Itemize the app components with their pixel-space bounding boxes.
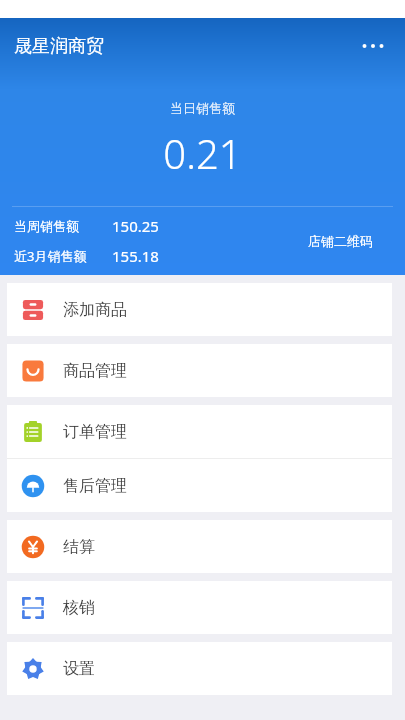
staticText: 近3月销售额 <box>14 247 87 265</box>
staticText: 核销 <box>63 598 95 618</box>
staticText: 当日销售额 <box>170 100 235 116</box>
staticText: 155.18 <box>112 246 159 266</box>
button[interactable]: More options <box>351 24 395 68</box>
staticText: 售后管理 <box>63 476 127 496</box>
staticText: 商品管理 <box>63 361 127 381</box>
button[interactable]: 添加商品 <box>7 283 392 336</box>
button[interactable]: 结算 <box>7 520 392 573</box>
button[interactable]: 订单管理 <box>7 405 392 458</box>
staticText: 店铺二维码 <box>308 233 373 249</box>
button[interactable]: 售后管理 <box>7 459 392 512</box>
button[interactable]: 商品管理 <box>7 344 392 397</box>
button[interactable]: 核销 <box>7 581 392 634</box>
staticText: 添加商品 <box>63 300 127 320</box>
staticText: 150.25 <box>112 216 159 236</box>
staticText: 0.21 <box>163 126 242 180</box>
staticText: 晟星润商贸 <box>14 35 104 58</box>
staticText: 结算 <box>63 537 95 557</box>
button[interactable]: 设置 <box>7 642 392 695</box>
staticText: 当周销售额 <box>14 218 79 234</box>
button[interactable]: 店铺二维码 <box>304 227 377 255</box>
staticText: 设置 <box>63 659 95 679</box>
staticText: 订单管理 <box>63 422 127 442</box>
